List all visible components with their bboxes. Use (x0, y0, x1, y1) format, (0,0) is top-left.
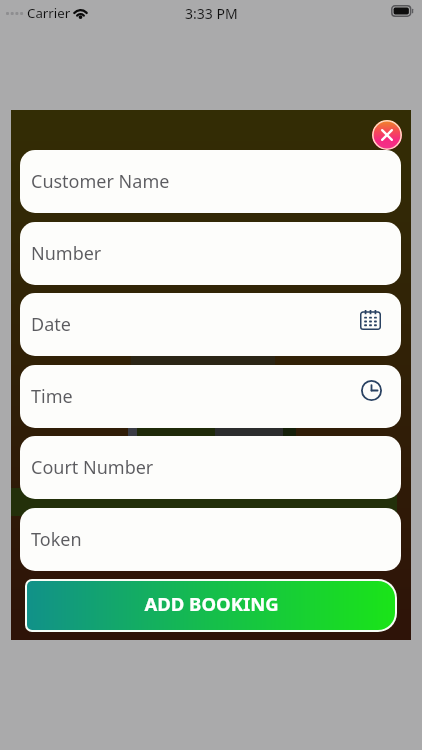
button[interactable]: Number (20, 222, 401, 285)
button[interactable]: Customer Name (20, 150, 401, 213)
staticText: Customer Name (31, 169, 170, 194)
button[interactable]: Close (372, 120, 402, 150)
staticText: Carrier (27, 4, 71, 22)
staticText: Date (31, 312, 71, 337)
button[interactable]: Token (20, 508, 401, 571)
button[interactable]: Court Number (20, 436, 401, 499)
staticText: 3:33 PM (185, 4, 238, 23)
staticText: Token (31, 527, 82, 552)
button[interactable]: Time (20, 365, 401, 428)
staticText: Number (31, 241, 102, 266)
staticText: Court Number (31, 455, 154, 480)
button[interactable]: Date (20, 293, 401, 356)
button[interactable]: ADD BOOKING (27, 581, 395, 630)
staticText: ADD BOOKING (144, 591, 279, 616)
staticText: Time (31, 384, 73, 409)
